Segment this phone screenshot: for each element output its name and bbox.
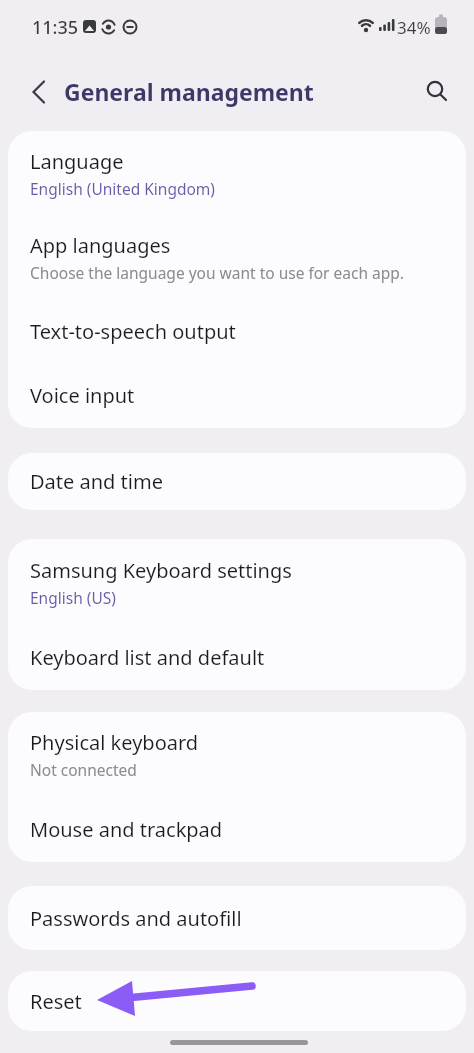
staticText: Language <box>30 148 124 175</box>
staticText: Text-to-speech output <box>30 318 236 345</box>
staticText: Keyboard list and default <box>30 644 265 671</box>
staticText: App languages <box>30 232 171 259</box>
button[interactable]: Reset <box>8 971 466 1031</box>
button[interactable]: Passwords and autofill <box>8 886 466 950</box>
button[interactable]: Language <box>8 131 466 215</box>
button[interactable]: Keyboard list and default <box>8 625 466 690</box>
staticText: Passwords and autofill <box>30 905 242 932</box>
button[interactable]: Mouse and trackpad <box>8 797 466 862</box>
button[interactable]: Text-to-speech output <box>8 299 466 363</box>
button[interactable] <box>404 62 474 122</box>
button[interactable]: Samsung Keyboard settings <box>8 539 466 625</box>
staticText: Choose the language you want to use for … <box>30 262 404 283</box>
staticText: Voice input <box>30 382 135 409</box>
staticText: Reset <box>30 988 82 1015</box>
staticText: Date and time <box>30 468 163 495</box>
button[interactable]: Voice input <box>8 363 466 428</box>
button[interactable]: App languages <box>8 215 466 299</box>
staticText: Mouse and trackpad <box>30 816 223 843</box>
button[interactable]: Date and time <box>8 453 466 510</box>
staticText: 11:35 <box>32 15 79 40</box>
button[interactable] <box>0 62 64 122</box>
staticText: 34% <box>397 16 431 39</box>
staticText: Samsung Keyboard settings <box>30 557 292 584</box>
staticText: General management <box>64 76 314 107</box>
staticText: Physical keyboard <box>30 729 199 756</box>
button[interactable]: Physical keyboard <box>8 712 466 797</box>
staticText: Not connected <box>30 759 137 780</box>
staticText: English (United Kingdom) <box>30 178 215 199</box>
staticText: English (US) <box>30 587 116 608</box>
